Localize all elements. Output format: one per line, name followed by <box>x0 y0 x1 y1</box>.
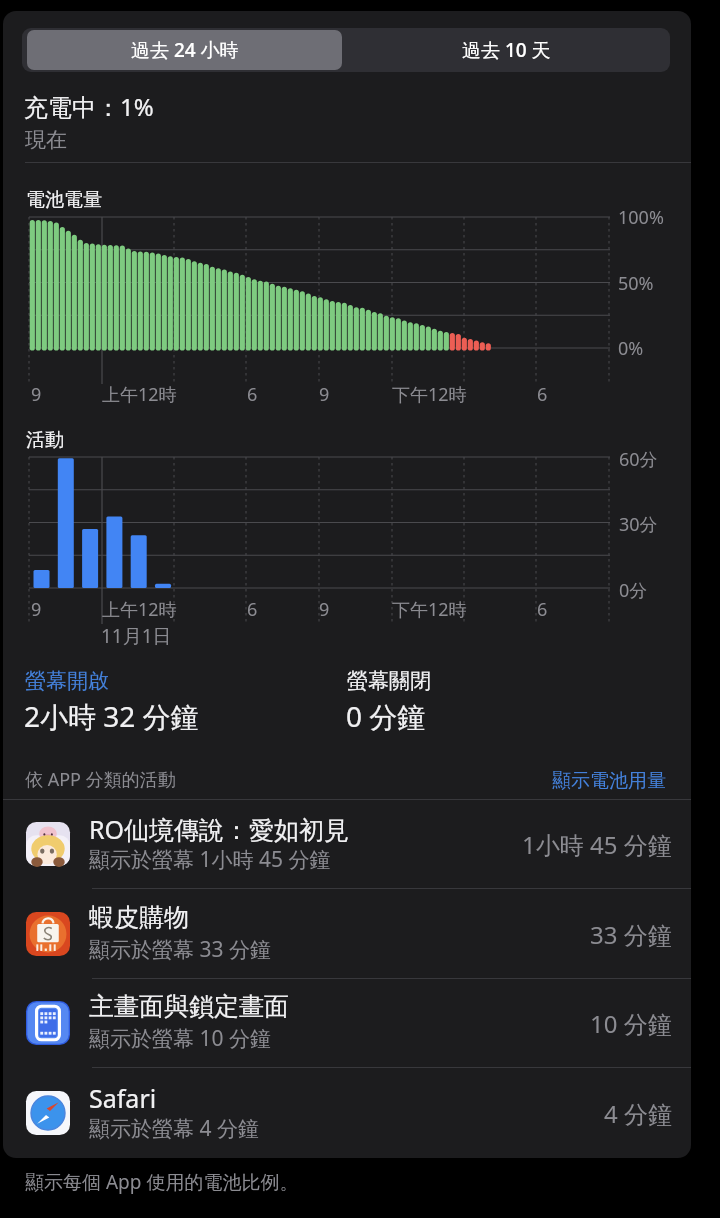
staticText: 依 APP 分類的活動 <box>25 767 176 792</box>
staticText: 6 <box>537 597 548 622</box>
staticText: 下午12時 <box>392 382 467 407</box>
staticText: 1小時 45 分鐘 <box>522 828 672 861</box>
staticText: 螢幕開啟 <box>25 668 109 694</box>
staticText: 6 <box>247 382 258 407</box>
staticText: 顯示於螢幕 33 分鐘 <box>89 935 271 964</box>
staticText: 活動 <box>26 428 64 452</box>
staticText: 過去 24 小時 <box>131 37 239 63</box>
staticText: 顯示於螢幕 4 分鐘 <box>89 1114 259 1143</box>
staticText: Safari <box>89 1081 157 1115</box>
staticText: 上午12時 <box>102 382 177 407</box>
button[interactable]: 過去 10 天 <box>347 30 665 70</box>
staticText: 下午12時 <box>392 597 467 622</box>
staticText: 60分 <box>619 447 658 472</box>
button[interactable]: 過去 24 小時 <box>27 30 342 70</box>
staticText: 充電中：1% <box>24 90 154 123</box>
staticText: 6 <box>537 382 548 407</box>
button[interactable]: 蝦皮購物 <box>3 889 691 979</box>
staticText: 50% <box>618 271 654 296</box>
button[interactable]: 主畫面與鎖定畫面 <box>3 978 691 1068</box>
button[interactable]: 顯示電池用量 <box>552 769 666 793</box>
staticText: 顯示於螢幕 1小時 45 分鐘 <box>89 845 331 874</box>
staticText: 0分 <box>619 578 648 603</box>
staticText: 9 <box>319 597 330 622</box>
staticText: 2小時 32 分鐘 <box>24 697 199 735</box>
staticText: 顯示每個 App 使用的電池比例。 <box>25 1169 299 1195</box>
staticText: 主畫面與鎖定畫面 <box>89 991 289 1022</box>
button[interactable]: RO仙境傳說：愛如初見 <box>3 799 691 889</box>
staticText: 11月1日 <box>101 623 172 649</box>
staticText: 6 <box>247 597 258 622</box>
staticText: 電池電量 <box>26 188 102 212</box>
staticText: 9 <box>31 597 42 622</box>
staticText: 9 <box>31 382 42 407</box>
staticText: RO仙境傳說：愛如初見 <box>89 812 350 846</box>
staticText: 過去 10 天 <box>462 37 551 63</box>
staticText: 上午12時 <box>102 597 177 622</box>
staticText: 0 分鐘 <box>346 697 426 735</box>
staticText: 現在 <box>25 127 67 153</box>
staticText: 顯示於螢幕 10 分鐘 <box>89 1024 271 1053</box>
staticText: 33 分鐘 <box>590 918 672 951</box>
staticText: 9 <box>319 382 330 407</box>
button[interactable]: Safari <box>3 1068 691 1158</box>
staticText: 30分 <box>619 512 658 537</box>
staticText: 0% <box>618 336 644 361</box>
staticText: 100% <box>618 205 664 230</box>
staticText: 顯示電池用量 <box>552 769 666 793</box>
staticText: 螢幕關閉 <box>347 668 431 694</box>
staticText: 10 分鐘 <box>590 1007 672 1040</box>
staticText: 蝦皮購物 <box>89 902 189 933</box>
staticText: 4 分鐘 <box>604 1097 672 1130</box>
